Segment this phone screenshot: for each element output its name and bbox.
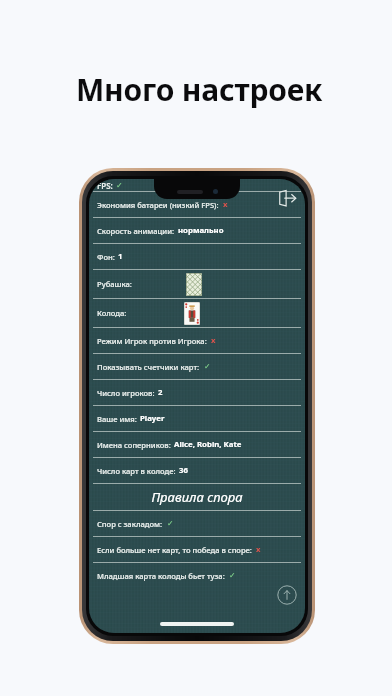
staticText: ✓ (167, 519, 174, 528)
staticText: FPS: (97, 180, 113, 191)
staticText: Показывать счетчики карт: (97, 362, 200, 372)
button[interactable]: Спор с закладом: (89, 511, 305, 536)
button[interactable]: Имена соперников: (89, 432, 305, 457)
button[interactable]: Число карт в колоде: (89, 458, 305, 483)
staticText: Режим Игрок против Игрока: (97, 336, 207, 346)
staticText: Ваше имя: (97, 414, 137, 424)
button[interactable]: Правила спора (89, 484, 305, 510)
staticText: Player (140, 413, 165, 424)
button[interactable]: Фон: (89, 244, 305, 269)
button[interactable]: Скорость анимации: (89, 218, 305, 243)
staticText: x (211, 335, 216, 346)
button[interactable]: Режим Игрок против Игрока: (89, 328, 305, 353)
staticText: x (223, 199, 228, 210)
button[interactable]: Младшая карта колоды бьет туза: (89, 563, 305, 588)
staticText: Фон: (97, 252, 115, 262)
staticText: Правила спора (151, 488, 243, 506)
button[interactable]: Рубашка: (89, 270, 305, 298)
staticText: x (256, 544, 261, 555)
staticText: ✓ (204, 362, 211, 371)
staticText: Alice, Robin, Kate (174, 439, 242, 450)
button[interactable]: Если больше нет карт, то победа в споре: (89, 537, 305, 562)
staticText: ✓ (116, 181, 123, 190)
button[interactable]: Экономия батареи (низкий FPS): (89, 192, 305, 217)
button[interactable]: Колода: (89, 299, 305, 327)
button[interactable]: Card back (186, 273, 202, 296)
staticText: ✓ (229, 571, 236, 580)
staticText: Экономия батареи (низкий FPS): (97, 200, 219, 210)
button[interactable]: Ваше имя: (89, 406, 305, 431)
button[interactable]: Scroll to top (277, 585, 297, 605)
staticText: 1 (118, 251, 123, 262)
staticText: 2 (158, 387, 163, 398)
staticText: Спор с закладом: (97, 519, 163, 529)
button[interactable]: FPS: (89, 179, 305, 191)
button[interactable]: Показывать счетчики карт: (89, 354, 305, 379)
staticText: Младшая карта колоды бьет туза: (97, 571, 225, 581)
staticText: Колода: (97, 308, 127, 318)
staticText: Рубашка: (97, 279, 132, 289)
staticText: Много настроек (76, 69, 323, 110)
button[interactable]: Число игроков: (89, 380, 305, 405)
staticText: Если больше нет карт, то победа в споре: (97, 545, 252, 555)
staticText: Имена соперников: (97, 440, 171, 450)
staticText: нормально (178, 225, 224, 236)
button[interactable]: Card deck (184, 302, 200, 325)
staticText: Скорость анимации: (97, 226, 175, 236)
staticText: Число игроков: (97, 388, 155, 398)
staticText: 36 (179, 465, 188, 476)
button[interactable]: Exit (276, 187, 298, 209)
staticText: Число карт в колоде: (97, 466, 176, 476)
